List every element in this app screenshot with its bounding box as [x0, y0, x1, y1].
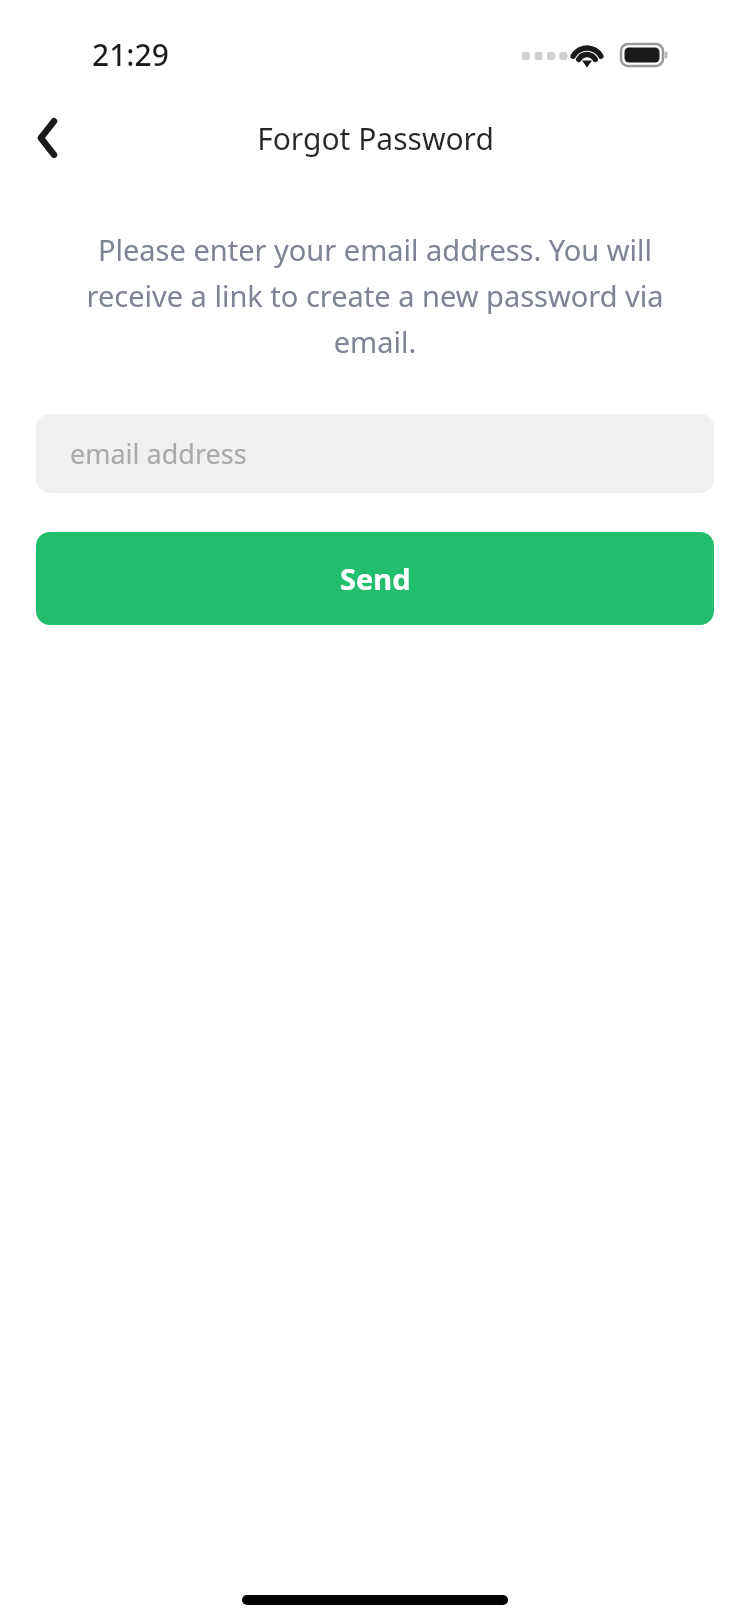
staticText: 21:29 — [92, 34, 169, 75]
staticText: Forgot Password — [257, 118, 494, 159]
button[interactable]: Back — [14, 104, 82, 172]
staticText: email address — [70, 435, 247, 472]
button[interactable]: Send — [36, 532, 714, 625]
staticText: Send — [340, 559, 411, 598]
staticText: Please enter your email address. You wil… — [86, 230, 664, 362]
button[interactable]: email address — [36, 414, 714, 493]
